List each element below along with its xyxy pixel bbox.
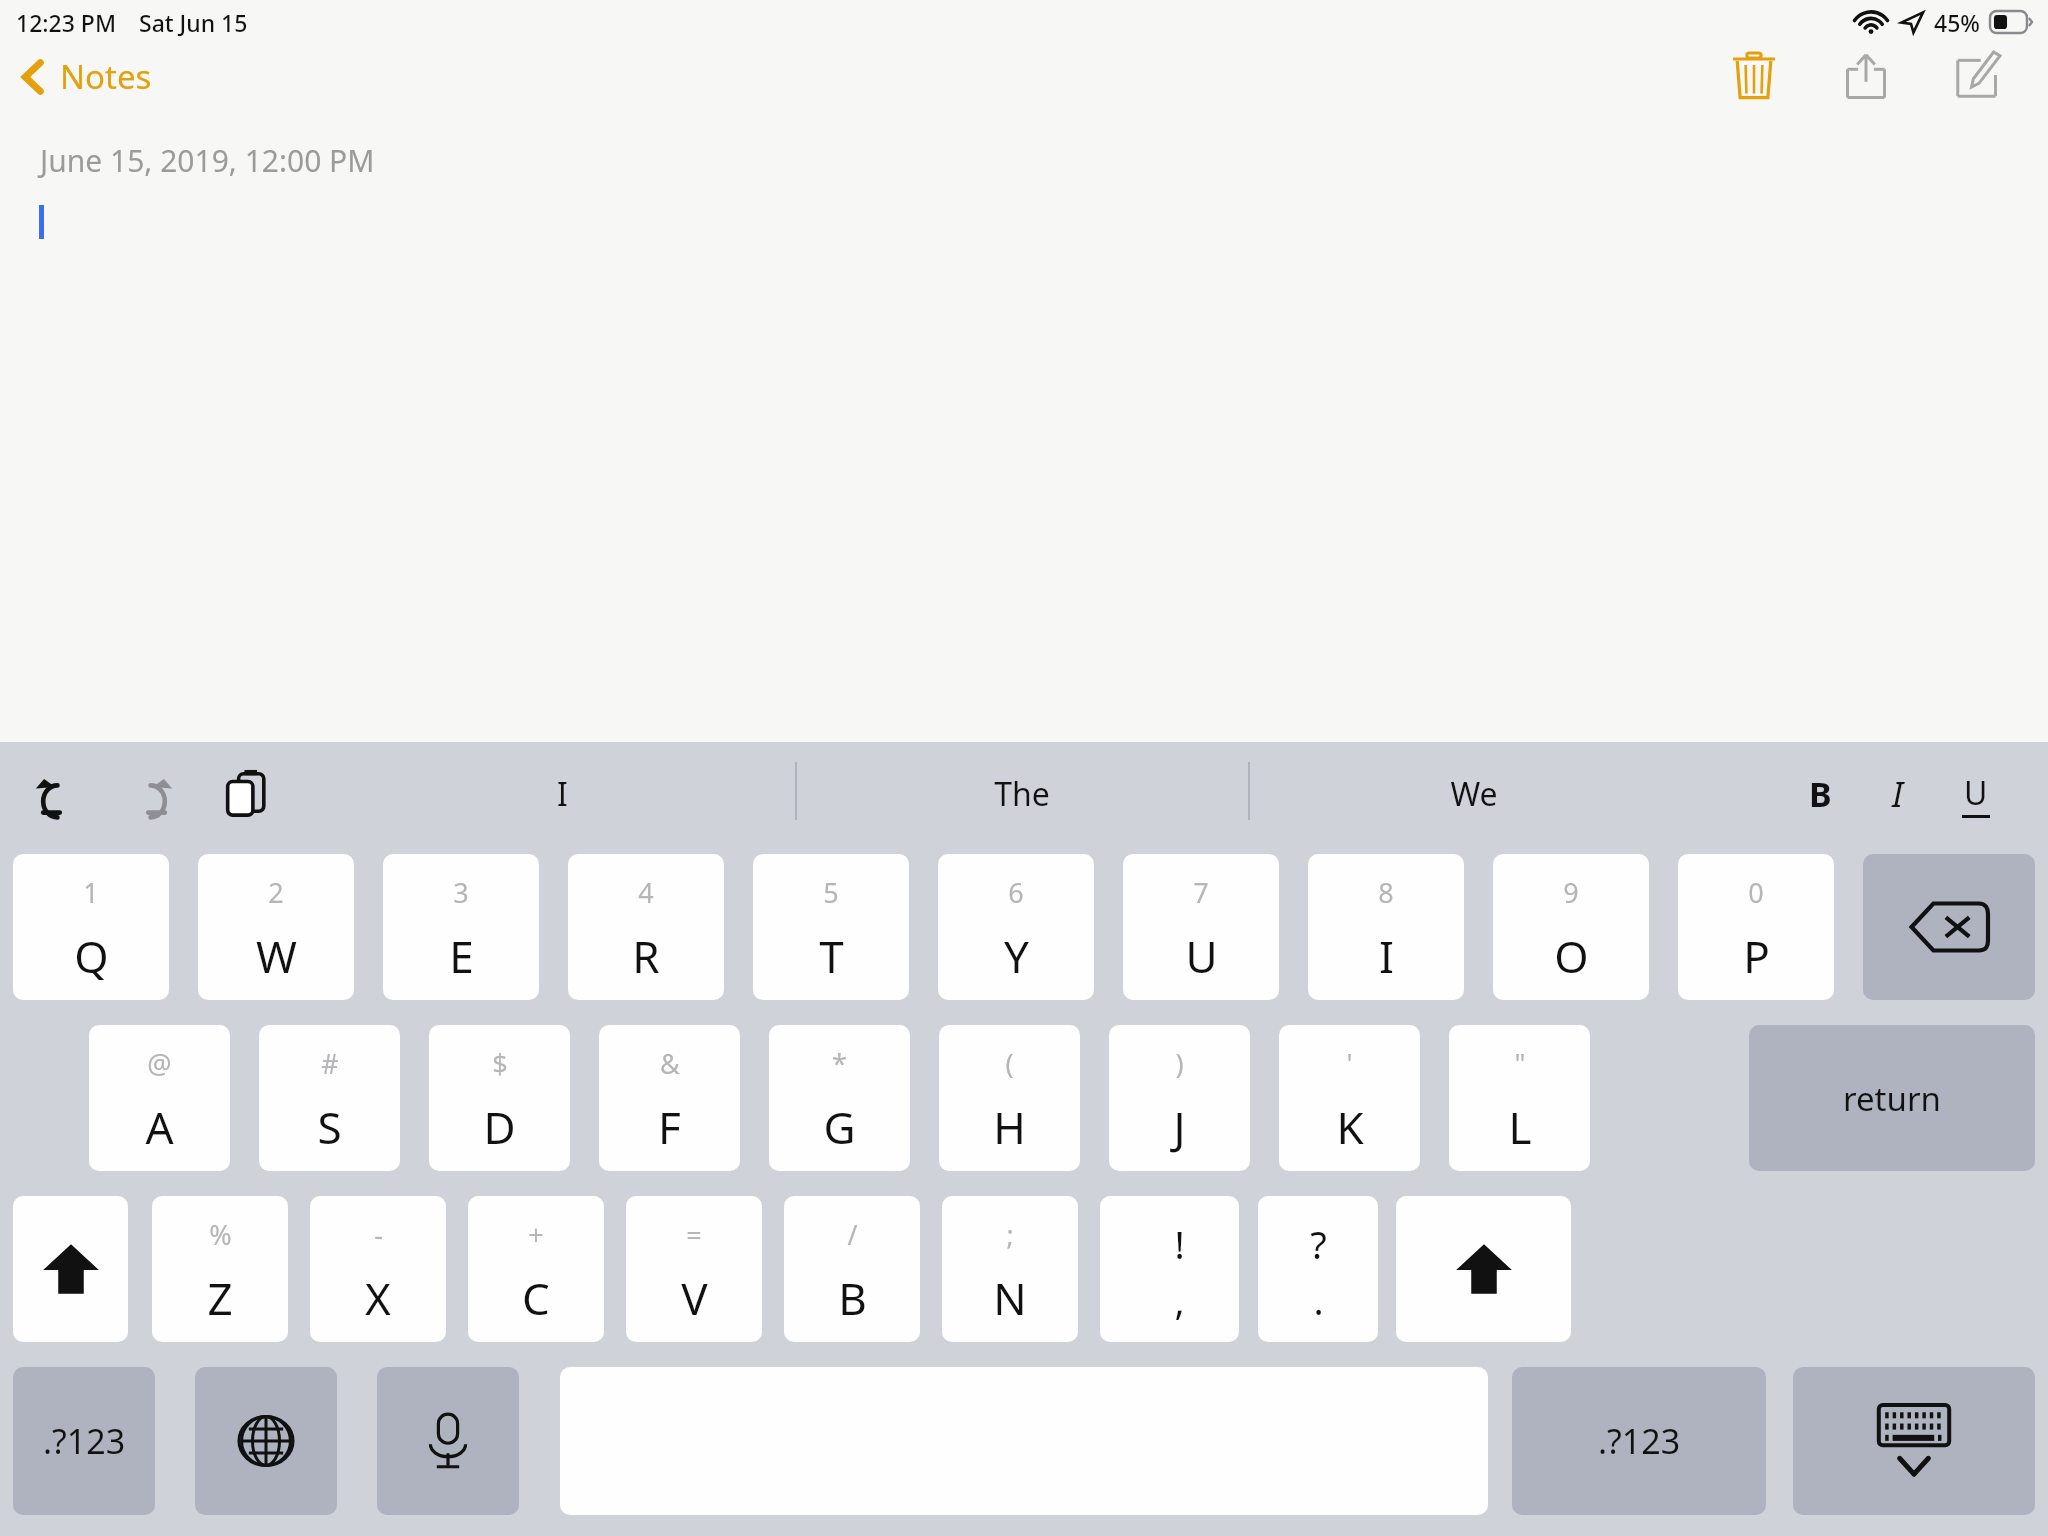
button[interactable]: $ — [429, 1025, 570, 1171]
button[interactable]: ? — [1258, 1196, 1378, 1342]
staticText: W — [256, 926, 297, 986]
button[interactable]: .?123 — [13, 1367, 155, 1515]
staticText: K — [1336, 1097, 1364, 1157]
staticText: June 15, 2019, 12:00 PM — [40, 140, 375, 181]
button[interactable]: + — [468, 1196, 604, 1342]
staticText: 0 — [1748, 874, 1764, 911]
staticText: % — [209, 1216, 232, 1253]
staticText: P — [1743, 926, 1770, 986]
button[interactable]: 6 — [938, 854, 1094, 1000]
button[interactable]: return — [1749, 1025, 2035, 1171]
staticText: E — [449, 926, 474, 986]
staticText: ) — [1175, 1045, 1184, 1082]
button[interactable]: Shift — [1396, 1196, 1571, 1342]
button[interactable]: ) — [1109, 1025, 1250, 1171]
button[interactable]: Underline — [1946, 764, 2006, 824]
staticText: 12:23 PM — [16, 7, 117, 38]
staticText: $ — [492, 1045, 508, 1082]
staticText: A — [145, 1097, 174, 1157]
staticText: 2 — [268, 874, 284, 911]
button[interactable]: 8 — [1308, 854, 1464, 1000]
button[interactable]: I — [330, 742, 795, 846]
button[interactable]: Paste — [218, 764, 276, 822]
button[interactable]: Backspace — [1863, 854, 2035, 1000]
staticText: S — [317, 1097, 342, 1157]
button[interactable]: Shift — [13, 1196, 128, 1342]
button[interactable]: Next keyboard — [195, 1367, 337, 1515]
button[interactable]: : — [1100, 1196, 1236, 1342]
button[interactable]: 4 — [568, 854, 724, 1000]
staticText: - — [374, 1216, 383, 1253]
button[interactable]: @ — [89, 1025, 230, 1171]
button[interactable]: " — [1449, 1025, 1590, 1171]
staticText: .?123 — [1598, 1418, 1681, 1464]
staticText: 9 — [1563, 874, 1579, 911]
button[interactable]: We — [1248, 742, 1700, 846]
button[interactable]: The — [795, 742, 1248, 846]
button[interactable]: = — [626, 1196, 762, 1342]
staticText: ? — [1310, 1218, 1327, 1270]
button[interactable]: Delete note — [1716, 48, 1792, 104]
button[interactable]: Italic — [1868, 764, 1928, 824]
staticText: H — [993, 1097, 1026, 1157]
staticText: Y — [1004, 926, 1029, 986]
staticText: ( — [1005, 1045, 1014, 1082]
button[interactable]: Hide keyboard — [1793, 1367, 2035, 1515]
staticText: R — [632, 926, 660, 986]
staticText: 4 — [638, 874, 654, 911]
staticText: * — [832, 1045, 847, 1082]
button[interactable]: 0 — [1678, 854, 1834, 1000]
button[interactable]: ; — [942, 1196, 1078, 1342]
staticText: Sat Jun 15 — [139, 7, 248, 38]
staticText: . — [1313, 1274, 1324, 1326]
staticText: 1 — [83, 874, 99, 911]
staticText: ; — [1006, 1216, 1014, 1253]
button[interactable]: 3 — [383, 854, 539, 1000]
button[interactable]: .?123 — [1512, 1367, 1766, 1515]
staticText: I — [1892, 771, 1904, 817]
button[interactable]: 2 — [198, 854, 354, 1000]
staticText: 45% — [1934, 7, 1980, 38]
button[interactable]: ' — [1279, 1025, 1420, 1171]
staticText: ! — [1174, 1218, 1185, 1270]
staticText: T — [819, 926, 844, 986]
staticText: C — [522, 1268, 550, 1328]
button[interactable]: Compose new note — [1940, 48, 2016, 104]
staticText: + — [528, 1216, 544, 1253]
staticText: J — [1173, 1097, 1186, 1157]
staticText: I — [1379, 926, 1394, 986]
button[interactable]: Bold — [1790, 764, 1850, 824]
staticText: & — [660, 1045, 680, 1082]
button[interactable]: Share — [1828, 48, 1904, 104]
staticText: L — [1508, 1097, 1532, 1157]
button[interactable]: - — [310, 1196, 446, 1342]
button[interactable]: % — [152, 1196, 288, 1342]
button[interactable]: Notes — [20, 54, 152, 99]
staticText: " — [1514, 1045, 1526, 1082]
staticText: 8 — [1378, 874, 1394, 911]
staticText: B — [1809, 771, 1832, 817]
button[interactable]: 5 — [753, 854, 909, 1000]
button[interactable]: # — [259, 1025, 400, 1171]
staticText: M — [1148, 1268, 1188, 1328]
button[interactable]: Redo — [124, 768, 178, 822]
button[interactable]: / — [784, 1196, 920, 1342]
button[interactable]: 9 — [1493, 854, 1649, 1000]
staticText: 5 — [823, 874, 839, 911]
button[interactable]: 1 — [13, 854, 169, 1000]
staticText: 3 — [453, 874, 469, 911]
staticText: V — [681, 1268, 708, 1328]
button[interactable]: Undo — [30, 768, 84, 822]
button[interactable]: & — [599, 1025, 740, 1171]
staticText: return — [1843, 1076, 1941, 1121]
staticText: / — [847, 1216, 858, 1253]
staticText: N — [993, 1268, 1027, 1328]
button[interactable]: ! — [1119, 1196, 1239, 1342]
button[interactable]: * — [769, 1025, 910, 1171]
button[interactable]: ( — [939, 1025, 1080, 1171]
staticText: D — [483, 1097, 516, 1157]
button[interactable]: Dictation — [377, 1367, 519, 1515]
button[interactable]: 7 — [1123, 854, 1279, 1000]
